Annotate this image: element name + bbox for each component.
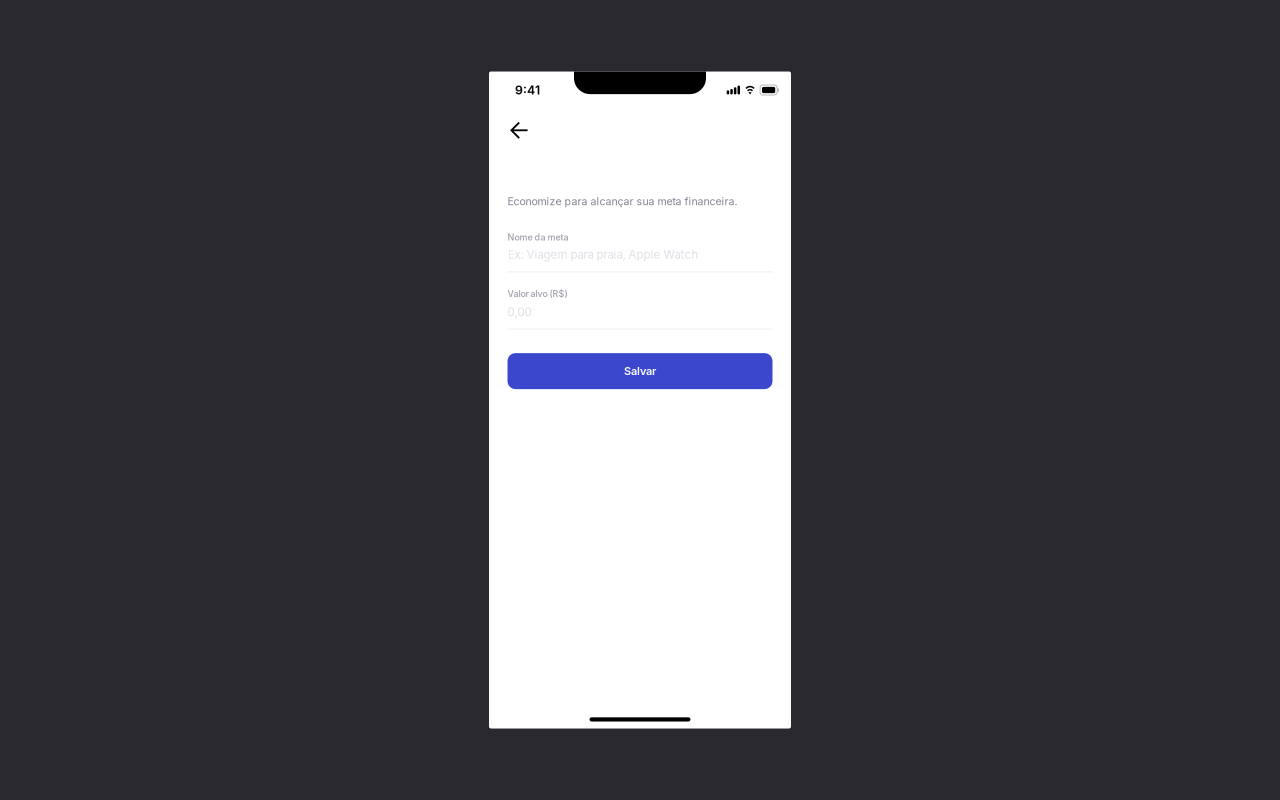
staticText: Salvar <box>624 364 656 378</box>
button[interactable]: Voltar <box>489 112 542 148</box>
staticText: Valor alvo (R$) <box>507 288 567 299</box>
staticText: Nome da meta <box>507 232 568 242</box>
staticText: Ex: Viagem para praia, Apple Watch <box>507 248 698 261</box>
staticText: 0,00 <box>507 305 531 319</box>
staticText: 9:41 <box>515 83 540 97</box>
button[interactable]: Salvar <box>507 353 772 389</box>
button[interactable]: Nome da meta <box>507 232 772 272</box>
staticText: Economize para alcançar sua meta finance… <box>507 195 737 208</box>
button[interactable]: Valor alvo (R$) <box>507 288 772 330</box>
